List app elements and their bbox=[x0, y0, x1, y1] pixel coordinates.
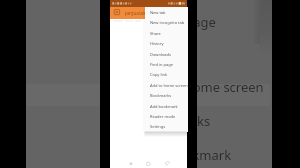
staticText: Reader mode bbox=[150, 114, 176, 119]
button[interactable]: Copy link bbox=[145, 69, 188, 79]
button[interactable]: perjuataka bbox=[110, 7, 187, 19]
staticText: History bbox=[150, 41, 164, 46]
staticText: New incognito tab bbox=[150, 20, 185, 25]
button[interactable]: Recent apps bbox=[123, 156, 139, 168]
staticText: Bookmarks bbox=[150, 93, 172, 98]
button[interactable]: Reader mode bbox=[145, 111, 188, 121]
button[interactable]: Add to home screen bbox=[145, 80, 188, 90]
staticText: Add to home screen bbox=[150, 83, 188, 88]
staticText: Copy link bbox=[150, 72, 168, 77]
staticText: Downloads bbox=[150, 52, 171, 57]
button[interactable]: Add bookmark bbox=[145, 101, 188, 111]
button[interactable]: Back bbox=[159, 156, 175, 168]
staticText: Add to home screen bbox=[141, 78, 264, 96]
staticText: Share bbox=[150, 31, 161, 36]
button[interactable]: New incognito tab bbox=[145, 17, 188, 27]
staticText: Find in page bbox=[150, 62, 174, 67]
button[interactable]: History bbox=[145, 38, 188, 48]
staticText: perjuataka bbox=[125, 10, 149, 16]
button[interactable]: Share bbox=[145, 28, 188, 38]
staticText: Settings bbox=[150, 124, 166, 129]
staticText: Add bookmark bbox=[141, 146, 232, 164]
button[interactable]: Find in page bbox=[145, 59, 188, 69]
button[interactable]: Settings bbox=[145, 121, 188, 131]
staticText: Find in page bbox=[141, 13, 216, 31]
button[interactable]: New tab bbox=[145, 7, 188, 17]
button[interactable]: Downloads bbox=[145, 49, 188, 59]
button[interactable]: Bookmarks bbox=[145, 90, 188, 100]
staticText: Add bookmark bbox=[150, 104, 178, 109]
staticText: Bookmarks bbox=[141, 112, 211, 130]
staticText: New tab bbox=[150, 10, 166, 15]
button[interactable]: Home bbox=[141, 156, 157, 168]
